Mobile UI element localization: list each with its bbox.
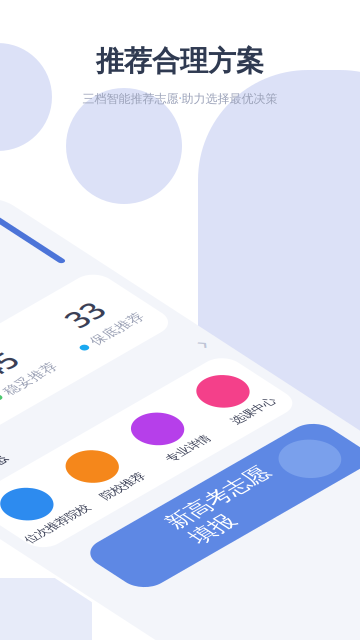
staticText: 本省专区: [63, 578, 99, 589]
staticText: 推荐合理方案: [96, 44, 264, 78]
staticText: 一分一段: [137, 578, 173, 589]
staticText: 三档智能推荐志愿·助力选择最优决策: [82, 90, 277, 106]
